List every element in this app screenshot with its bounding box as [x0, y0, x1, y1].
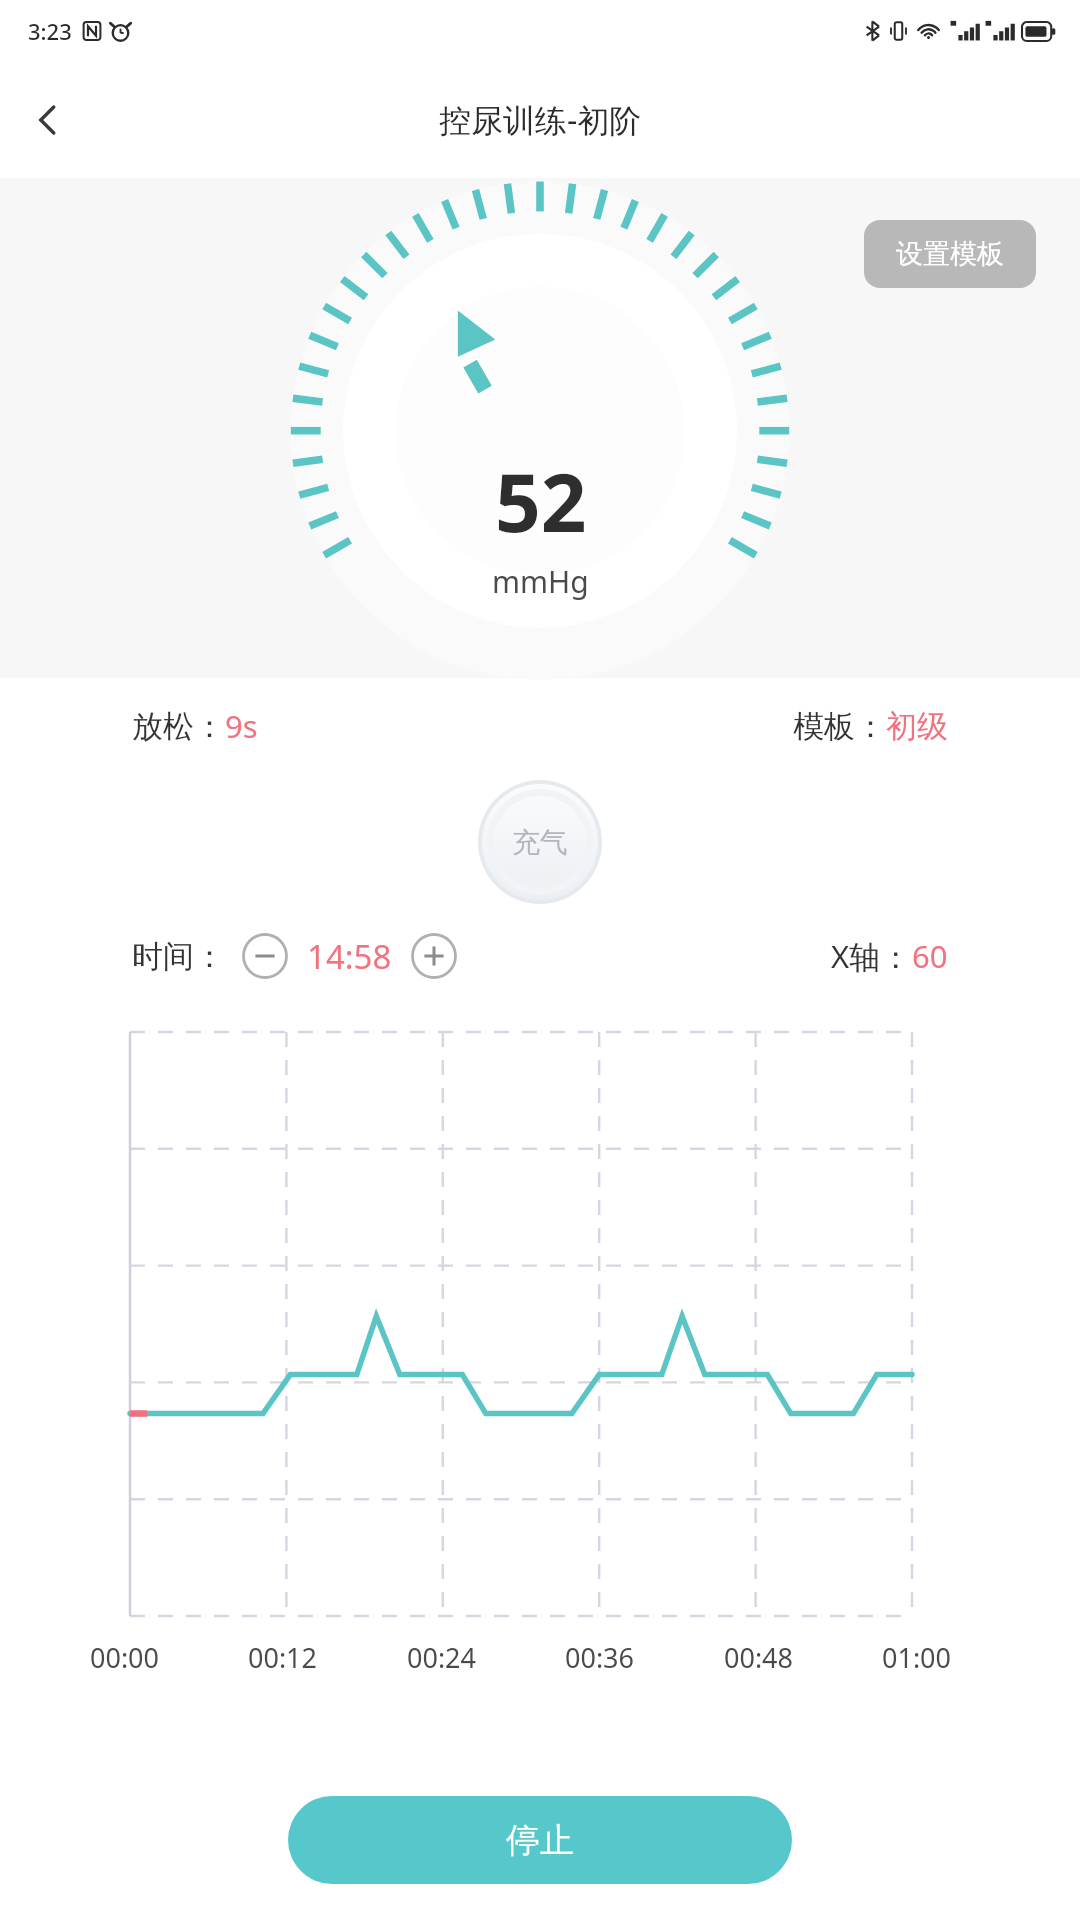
- staticText: 00:48: [724, 1639, 794, 1676]
- staticText: 00:24: [407, 1639, 477, 1676]
- staticText: mmHg: [492, 561, 589, 602]
- button[interactable]: 设置模板: [864, 220, 1036, 288]
- staticText: 00:12: [248, 1639, 318, 1676]
- staticText: X轴：: [831, 935, 912, 977]
- staticText: 3:23: [28, 16, 72, 46]
- staticText: 时间：: [132, 937, 225, 976]
- button[interactable]: Decrease time: [241, 932, 289, 980]
- staticText: 00:00: [90, 1639, 160, 1676]
- staticText: 初级: [886, 707, 948, 746]
- staticText: 14:58: [307, 934, 392, 979]
- button[interactable]: 停止: [288, 1796, 792, 1884]
- button[interactable]: Increase time: [410, 932, 458, 980]
- staticText: 充气: [512, 825, 568, 860]
- button[interactable]: 充气: [478, 780, 602, 904]
- staticText: 设置模板: [896, 237, 1004, 271]
- staticText: 模板：: [793, 707, 886, 746]
- staticText: 00:36: [565, 1639, 635, 1676]
- staticText: 控尿训练-初阶: [439, 98, 642, 142]
- button[interactable]: Back: [10, 82, 86, 158]
- staticText: 放松：: [132, 707, 225, 746]
- staticText: 01:00: [882, 1639, 952, 1676]
- staticText: 60: [912, 935, 948, 977]
- staticText: 停止: [506, 1819, 574, 1862]
- staticText: 52: [495, 446, 587, 555]
- staticText: 9s: [225, 705, 258, 747]
